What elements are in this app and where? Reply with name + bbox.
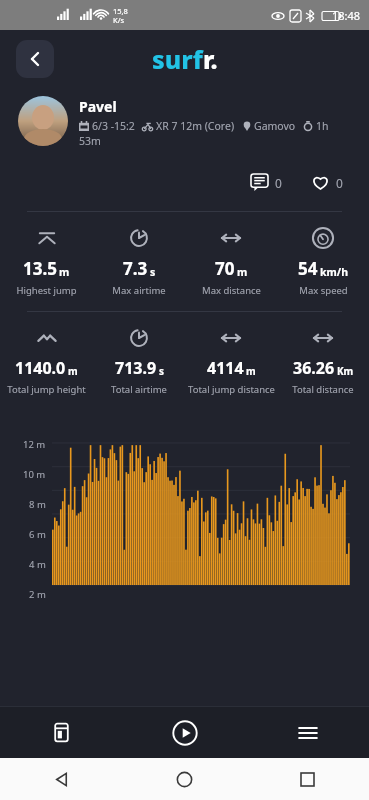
button[interactable]: Start	[123, 707, 246, 758]
staticText: 12 m	[23, 438, 46, 451]
staticText: m	[237, 265, 248, 279]
button[interactable]: Back	[0, 758, 123, 800]
staticText: 713.9	[115, 357, 157, 379]
button[interactable]: 4114	[185, 326, 277, 396]
staticText: 6/3 -15:2	[92, 119, 135, 133]
button[interactable]: 713.9	[93, 326, 185, 396]
staticText: 13.5	[23, 257, 57, 280]
staticText: Max distance	[202, 284, 261, 297]
staticText: 53m	[79, 134, 101, 148]
staticText: 7.3	[123, 257, 148, 280]
button[interactable]: 70	[185, 226, 277, 297]
staticText: s	[150, 265, 156, 279]
staticText: Total jump distance	[188, 383, 275, 396]
button[interactable]: Home	[123, 758, 246, 800]
staticText: 0	[275, 175, 282, 191]
staticText: Highest jump	[16, 284, 77, 297]
staticText: XR 7 12m (Core)	[156, 119, 235, 133]
staticText: 10 m	[23, 468, 46, 481]
staticText: m	[68, 364, 78, 378]
staticText: 70	[215, 257, 235, 280]
staticText: Total distance	[292, 383, 354, 396]
other: Comments	[251, 174, 268, 191]
staticText: r.	[203, 42, 218, 76]
staticText: 6 m	[29, 528, 46, 541]
staticText: Gamovo	[254, 119, 296, 133]
button[interactable]: Recents	[246, 758, 369, 800]
staticText: Pavel	[79, 97, 117, 116]
button[interactable]: Comments	[247, 170, 286, 195]
button[interactable]: 13.5	[0, 226, 93, 297]
button[interactable]: Menu	[246, 707, 369, 758]
button[interactable]: Sessions	[0, 707, 123, 758]
staticText: 1140.0	[15, 357, 66, 379]
staticText: Max speed	[299, 284, 348, 297]
staticText: 4 m	[29, 558, 46, 571]
button[interactable]: 1140.0	[0, 326, 93, 396]
staticText: 4114	[207, 357, 244, 379]
staticText: 8 m	[29, 498, 46, 511]
staticText: 15,8 K/s	[113, 6, 128, 25]
staticText: 0	[336, 175, 343, 191]
staticText: km/h	[320, 265, 349, 279]
button[interactable]: 36.26	[277, 326, 369, 396]
staticText: Max airtime	[112, 284, 166, 297]
staticText: m	[59, 265, 70, 279]
staticText: Total airtime	[111, 383, 167, 396]
button[interactable]: 54	[277, 226, 369, 297]
staticText: 54	[298, 257, 318, 280]
staticText: 1h	[316, 119, 329, 133]
staticText: Km	[337, 364, 354, 378]
staticText: 36.26	[293, 357, 335, 379]
staticText: m	[246, 364, 256, 378]
button[interactable]: Like	[308, 170, 347, 195]
staticText: 18:48	[332, 8, 361, 23]
staticText: 2 m	[29, 588, 46, 601]
staticText: s	[159, 364, 164, 378]
staticText: surf	[152, 42, 203, 76]
button[interactable]: Back	[16, 40, 54, 78]
button[interactable]: 7.3	[93, 226, 185, 297]
staticText: Total jump height	[7, 383, 86, 396]
other: Like	[312, 174, 329, 191]
